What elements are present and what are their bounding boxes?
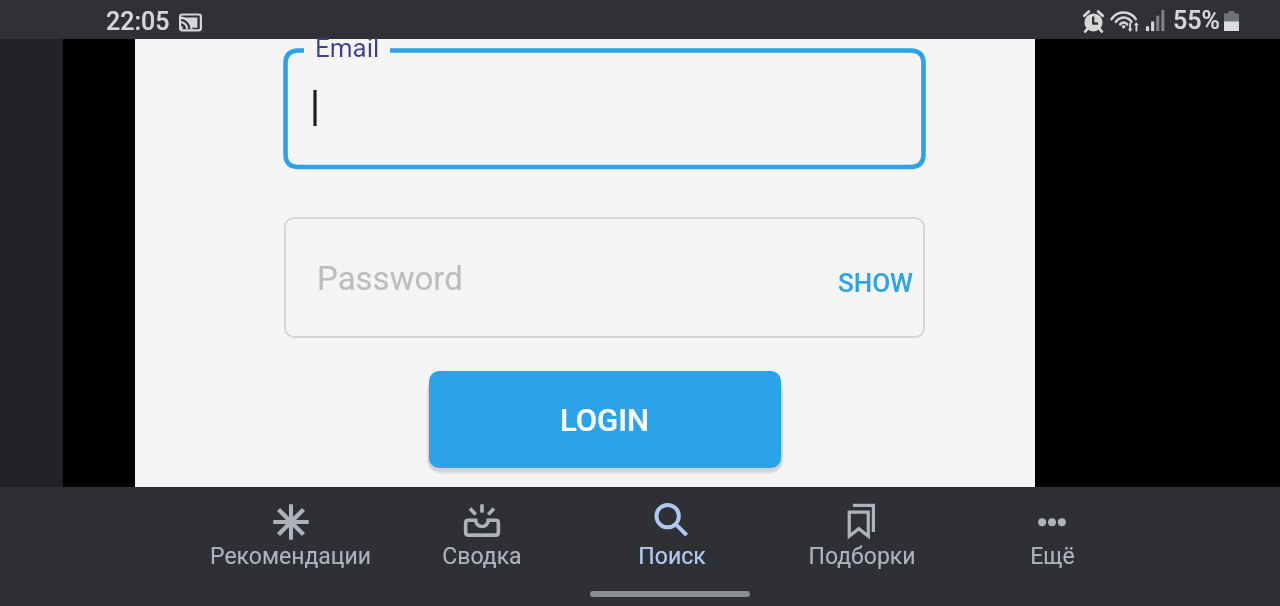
staticText: Рекомендации [210,543,371,570]
button[interactable]: Поиск [577,487,767,606]
button[interactable]: Ещё [957,487,1147,606]
button[interactable]: Рекомендации [195,487,386,606]
staticText: Сводка [442,543,522,570]
staticText: Подборки [808,543,916,570]
button[interactable]: SHOW [832,262,919,304]
staticText: LOGIN [560,402,650,438]
staticText: Ещё [1030,543,1075,570]
button[interactable]: LOGIN [429,371,781,468]
staticText: Password [317,259,463,298]
button[interactable]: Подборки [767,487,957,606]
staticText: Email [315,33,380,63]
button[interactable]: Password [284,217,925,338]
staticText: SHOW [838,268,913,298]
staticText: 55% [1173,6,1220,35]
button[interactable]: Сводка [386,487,577,606]
button[interactable]: Email input field [283,39,926,177]
staticText: Поиск [638,543,706,570]
staticText: 22:05 [106,7,170,36]
